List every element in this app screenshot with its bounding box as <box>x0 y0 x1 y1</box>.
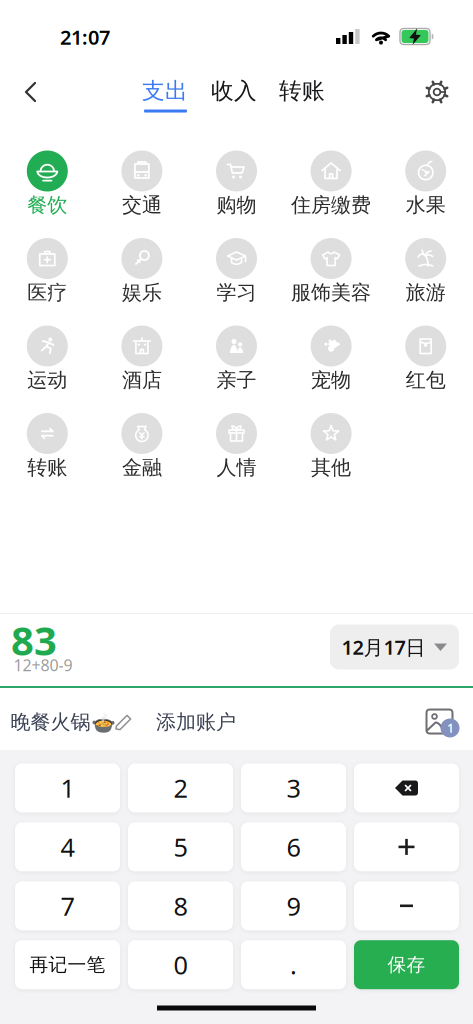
staticText: 红包 <box>406 368 446 392</box>
button[interactable]: 酒店 <box>95 325 189 403</box>
staticText: 学习 <box>216 280 256 305</box>
button[interactable]: 收入 <box>201 69 267 113</box>
staticText: 添加账户 <box>156 710 236 734</box>
staticText: 酒店 <box>122 368 162 392</box>
staticText: 收入 <box>211 77 257 105</box>
button[interactable]: Settings <box>415 70 459 114</box>
staticText: 6 <box>286 830 300 864</box>
button[interactable]: 0 <box>128 940 233 989</box>
staticText: 21:07 <box>60 24 110 50</box>
button[interactable]: Plus <box>354 822 459 871</box>
staticText: 保存 <box>387 953 425 976</box>
button[interactable]: 5 <box>128 822 233 871</box>
staticText: 1 <box>447 720 454 736</box>
staticText: 0 <box>173 948 187 981</box>
staticText: 旅游 <box>406 280 446 305</box>
staticText: 9 <box>286 889 300 923</box>
staticText: 12月17日 <box>341 634 425 660</box>
button[interactable]: 再记一笔 <box>15 940 120 989</box>
button[interactable]: Delete <box>354 763 459 812</box>
button[interactable]: 宠物 <box>284 325 378 403</box>
staticText: 人情 <box>216 455 256 480</box>
staticText: 运动 <box>27 368 67 392</box>
button[interactable]: 12月17日 <box>330 624 459 669</box>
button[interactable]: 其他 <box>284 412 378 490</box>
button[interactable]: Edit note <box>112 710 136 734</box>
button[interactable]: 3 <box>241 763 346 812</box>
staticText: 晚餐火锅🍲 <box>10 710 115 734</box>
staticText: 亲子 <box>216 368 256 392</box>
button[interactable]: 7 <box>15 881 120 930</box>
staticText: 8 <box>173 889 187 923</box>
staticText: 3 <box>286 771 300 805</box>
button[interactable]: 医疗 <box>0 237 94 315</box>
button[interactable]: 转账 <box>0 412 94 490</box>
staticText: 83 <box>11 613 57 666</box>
button[interactable]: 8 <box>128 881 233 930</box>
button[interactable]: . <box>241 940 346 989</box>
button[interactable]: 餐饮 <box>0 150 94 228</box>
staticText: 5 <box>173 830 187 864</box>
staticText: 金融 <box>122 455 162 480</box>
button[interactable]: Minus <box>354 881 459 930</box>
staticText: 1 <box>60 771 74 805</box>
staticText: 水果 <box>406 193 446 217</box>
button[interactable]: 购物 <box>189 150 283 228</box>
button[interactable]: Add photo <box>418 700 462 744</box>
button[interactable]: 1 <box>15 763 120 812</box>
staticText: 娱乐 <box>122 280 162 305</box>
button[interactable]: 添加账户 <box>156 710 236 734</box>
staticText: 住房缴费 <box>291 193 371 217</box>
button[interactable]: 支出 <box>132 69 198 113</box>
button[interactable]: 金融 <box>95 412 189 490</box>
staticText: 7 <box>60 889 74 923</box>
staticText: 购物 <box>216 193 256 217</box>
button[interactable]: 交通 <box>95 150 189 228</box>
button[interactable]: 晚餐火锅🍲 <box>10 710 115 734</box>
button[interactable]: 6 <box>241 822 346 871</box>
button[interactable]: 水果 <box>379 150 473 228</box>
staticText: 餐饮 <box>27 193 67 217</box>
button[interactable]: 人情 <box>189 412 283 490</box>
button[interactable]: 2 <box>128 763 233 812</box>
staticText: 4 <box>60 830 74 864</box>
staticText: . <box>290 948 297 981</box>
staticText: 转账 <box>27 455 67 480</box>
button[interactable]: 4 <box>15 822 120 871</box>
staticText: 其他 <box>311 455 351 480</box>
staticText: 再记一笔 <box>29 953 105 976</box>
button[interactable]: 运动 <box>0 325 94 403</box>
button[interactable]: 旅游 <box>379 237 473 315</box>
staticText: 转账 <box>279 77 325 105</box>
button[interactable]: 9 <box>241 881 346 930</box>
button[interactable]: 亲子 <box>189 325 283 403</box>
button[interactable]: 保存 <box>354 940 459 989</box>
button[interactable]: 转账 <box>269 69 335 113</box>
staticText: 宠物 <box>311 368 351 392</box>
button[interactable]: 住房缴费 <box>284 150 378 228</box>
staticText: 医疗 <box>27 280 67 305</box>
staticText: 支出 <box>142 77 188 105</box>
button[interactable]: 娱乐 <box>95 237 189 315</box>
staticText: 12+80-9 <box>13 654 72 676</box>
staticText: 服饰美容 <box>291 280 371 305</box>
button[interactable]: 服饰美容 <box>284 237 378 315</box>
button[interactable]: 学习 <box>189 237 283 315</box>
staticText: 交通 <box>122 193 162 217</box>
button[interactable]: Back <box>8 70 52 114</box>
button[interactable]: 红包 <box>379 325 473 403</box>
staticText: 2 <box>173 771 187 805</box>
